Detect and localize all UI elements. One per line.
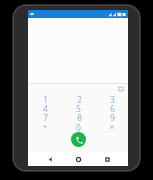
button[interactable]: *	[28, 122, 62, 132]
button[interactable]: 4	[28, 103, 62, 112]
button[interactable]: 1	[28, 94, 62, 103]
staticText: 2	[77, 94, 82, 103]
staticText: 8	[77, 112, 82, 122]
button[interactable]: 6	[95, 103, 128, 112]
button[interactable]: 3	[95, 94, 128, 103]
button[interactable]: Call	[71, 132, 86, 147]
button[interactable]: 0	[62, 122, 95, 132]
staticText: 9	[110, 112, 115, 122]
button[interactable]: Backspace	[116, 84, 126, 94]
button[interactable]: 5	[62, 103, 95, 112]
button[interactable]: 2	[62, 94, 95, 103]
button[interactable]: 8	[62, 112, 95, 122]
staticText: *	[43, 123, 47, 131]
button[interactable]: Recents	[100, 152, 114, 166]
staticText: 0	[76, 122, 81, 132]
staticText: 7	[43, 112, 48, 122]
staticText: 1	[43, 94, 48, 103]
button[interactable]: Home	[71, 152, 85, 166]
staticText: 5	[76, 103, 81, 112]
staticText: 4	[43, 103, 48, 112]
staticText: 3	[110, 94, 115, 103]
button[interactable]: #	[95, 122, 128, 132]
button[interactable]: Back	[43, 152, 57, 166]
button[interactable]: 7	[28, 112, 62, 122]
staticText: #	[110, 123, 114, 131]
staticText: 6	[110, 103, 115, 112]
button[interactable]: 9	[95, 112, 128, 122]
